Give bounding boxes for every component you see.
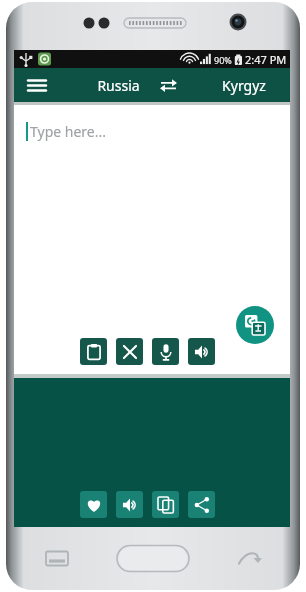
staticText: 2:47 PM — [245, 52, 287, 67]
staticText: Russia — [97, 76, 140, 95]
button[interactable]: Paste — [80, 338, 107, 365]
button[interactable]: Translate — [236, 306, 274, 344]
button[interactable]: Speak translation — [116, 491, 143, 518]
button[interactable]: Kyrgyz — [204, 70, 284, 100]
button[interactable]: Add to favourites — [80, 491, 107, 518]
button[interactable]: Speak source text — [188, 338, 215, 365]
button[interactable]: Swap languages — [153, 70, 183, 100]
button[interactable]: Voice input — [152, 338, 179, 365]
button[interactable]: Share translation — [188, 491, 215, 518]
staticText: Type here... — [30, 122, 106, 141]
staticText: 90% — [214, 54, 232, 66]
button[interactable]: Clear text — [116, 338, 143, 365]
staticText: Kyrgyz — [222, 76, 266, 95]
button[interactable]: Open navigation menu — [22, 70, 52, 100]
button[interactable]: Russia — [76, 70, 160, 100]
button[interactable]: Type here... — [26, 117, 290, 145]
button[interactable]: Copy translation — [152, 491, 179, 518]
